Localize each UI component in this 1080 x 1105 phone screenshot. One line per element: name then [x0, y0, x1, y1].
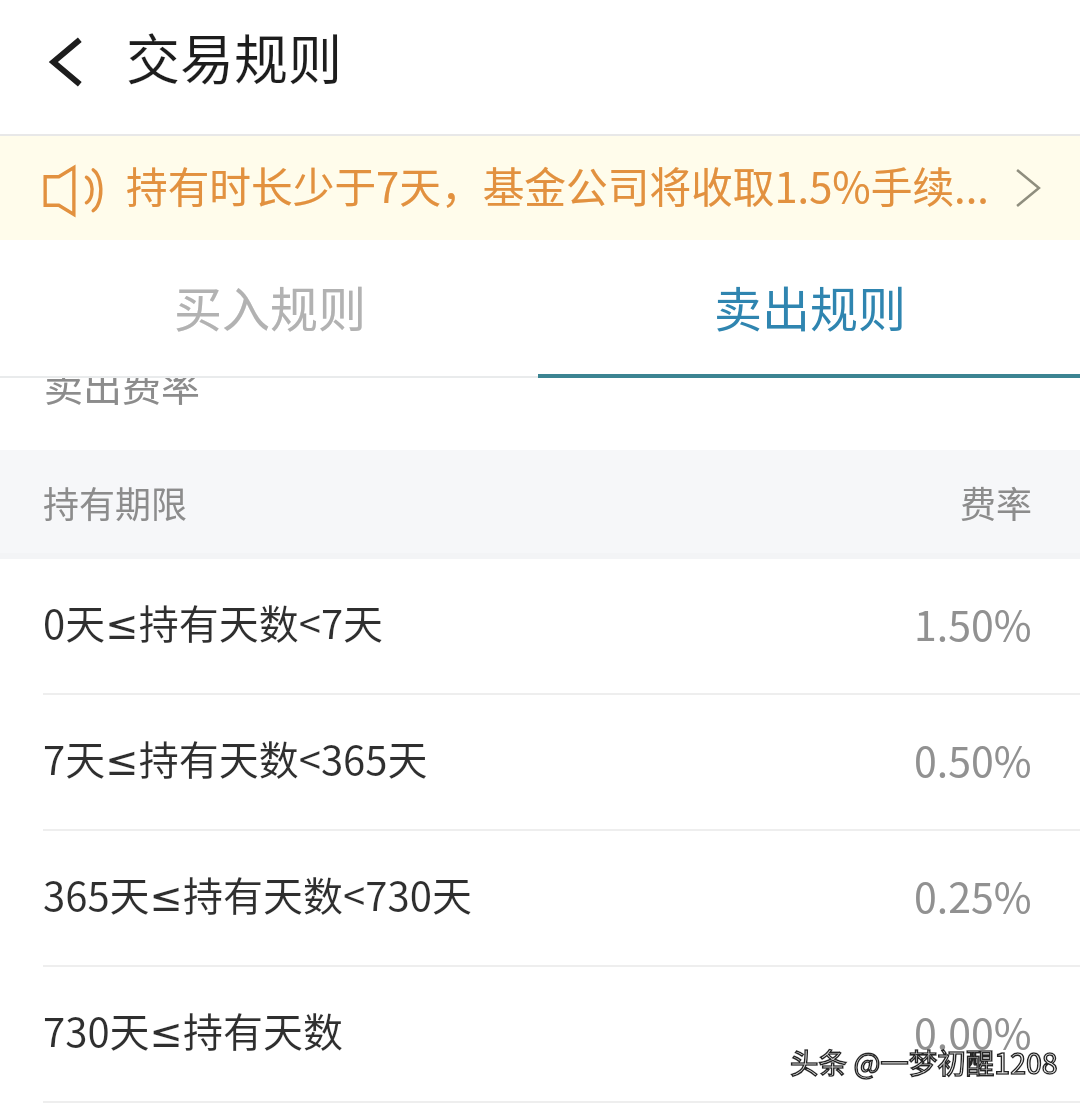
staticText: 0.00%	[914, 1001, 1032, 1060]
staticText: 持有时长少于7天，基金公司将收取1.5%手续...	[126, 155, 989, 215]
staticText: 头条 @一梦初醒1208	[790, 1041, 1058, 1082]
staticText: 0.25%	[914, 865, 1032, 924]
staticText: 卖出规则	[714, 271, 907, 341]
staticText: 730天≤持有天数	[43, 1001, 344, 1059]
staticText: 持有期限	[43, 476, 188, 528]
staticText: 卖出费率	[44, 378, 201, 412]
staticText: 头条 @一梦初醒1208	[790, 1041, 1058, 1082]
button[interactable]: 持有时长少于7天，基金公司将收取1.5%手续...	[0, 136, 1080, 240]
button[interactable]: 7天≤持有天数<365天	[0, 695, 1080, 831]
staticText: 1.50%	[914, 593, 1032, 652]
button[interactable]: 365天≤持有天数<730天	[0, 831, 1080, 967]
other: Open notice	[1007, 167, 1049, 209]
staticText: 7天≤持有天数<365天	[43, 729, 428, 787]
button[interactable]: 买入规则	[0, 240, 540, 378]
staticText: 交易规则	[126, 17, 342, 95]
staticText: 0.50%	[914, 729, 1032, 788]
staticText: 买入规则	[174, 271, 367, 341]
button[interactable]: 0天≤持有天数<7天	[0, 559, 1080, 695]
staticText: 0天≤持有天数<7天	[43, 593, 384, 651]
button[interactable]: 卖出规则	[540, 240, 1080, 378]
staticText: 费率	[960, 476, 1033, 528]
staticText: 365天≤持有天数<730天	[43, 865, 472, 923]
button[interactable]: 730天≤持有天数	[0, 967, 1080, 1103]
button[interactable]: Back	[21, 20, 105, 104]
